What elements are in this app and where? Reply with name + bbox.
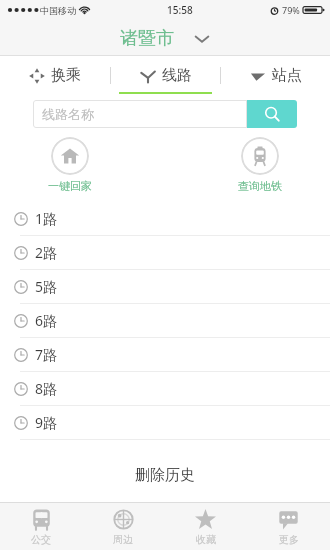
button[interactable]: 2路 [0,236,330,269]
staticText: 更多 [279,533,299,546]
button[interactable]: 换乘 [0,56,110,94]
staticText: 站点 [272,66,302,85]
staticText: 换乘 [51,66,81,85]
staticText: 收藏 [196,533,216,546]
button[interactable]: 周边 [82,503,164,550]
staticText: 15:58 [167,3,193,17]
staticText: 诸暨市 [120,27,174,50]
button[interactable]: 公交 [0,503,82,550]
staticText: 5路 [35,277,58,296]
button[interactable]: 查询地铁 [234,137,286,193]
staticText: 中国移动 [40,5,76,16]
button[interactable]: 更多 [247,503,330,550]
button[interactable]: 9路 [0,406,330,439]
button[interactable]: 8路 [0,372,330,405]
staticText: 79% [282,4,300,16]
button[interactable]: 6路 [0,304,330,337]
staticText: 8路 [35,379,58,398]
staticText: 9路 [35,413,58,432]
staticText: 周边 [113,533,133,546]
staticText: 线路 [162,66,192,85]
button[interactable]: 5路 [0,270,330,303]
button[interactable]: 一键回家 [44,137,96,193]
button[interactable]: 删除历史 [0,462,330,488]
button[interactable]: 站点 [221,56,330,94]
staticText: 公交 [31,533,51,546]
staticText: 删除历史 [135,466,195,485]
button[interactable]: 收藏 [164,503,247,550]
button[interactable]: 线路名称 [33,100,247,128]
staticText: 1路 [35,209,58,228]
staticText: 2路 [35,243,58,262]
staticText: 查询地铁 [238,179,282,193]
button[interactable]: 诸暨市 [120,27,210,50]
staticText: 6路 [35,311,58,330]
staticText: 7路 [35,345,58,364]
staticText: 一键回家 [48,179,92,193]
button[interactable]: 1路 [0,202,330,235]
staticText: 线路名称 [42,106,94,122]
button[interactable]: 线路 [111,56,220,94]
button[interactable]: 7路 [0,338,330,371]
button[interactable]: Search [247,100,297,128]
